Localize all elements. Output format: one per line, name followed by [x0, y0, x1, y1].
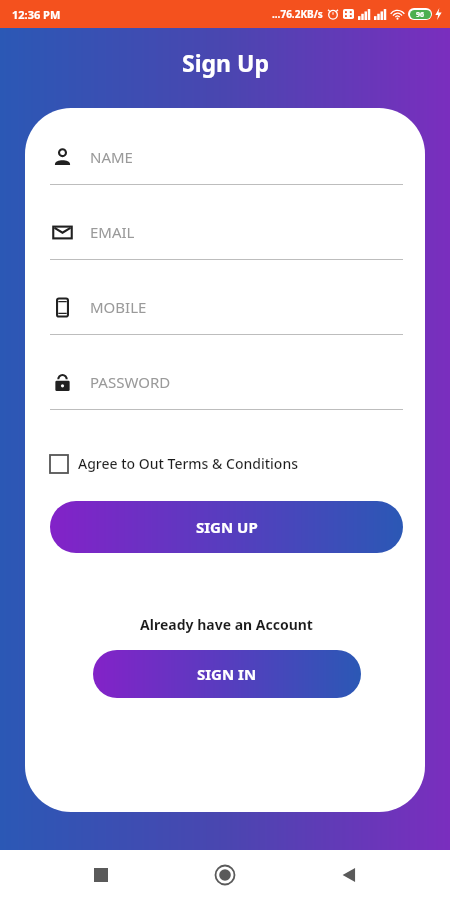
staticText: ...76.2KB/s	[272, 7, 323, 21]
button[interactable]: PASSWORD	[50, 361, 403, 436]
staticText: Already have an Account	[50, 615, 403, 634]
staticText: NAME	[90, 147, 133, 167]
staticText: Agree to Out Terms & Conditions	[78, 454, 298, 473]
staticText: 12:36 PM	[12, 7, 61, 22]
button[interactable]: NAME	[50, 136, 403, 211]
button[interactable]: Home	[202, 852, 248, 898]
button[interactable]: EMAIL	[50, 211, 403, 286]
staticText: PASSWORD	[90, 372, 171, 392]
button[interactable]: Agree to Out Terms & Conditions	[50, 454, 403, 473]
staticText: EMAIL	[90, 222, 135, 242]
button[interactable]: Recents	[78, 852, 124, 898]
staticText: 96	[416, 10, 425, 19]
staticText: SIGN UP	[196, 517, 258, 537]
staticText: SIGN IN	[197, 664, 257, 684]
button[interactable]: SIGN IN	[93, 650, 361, 698]
button[interactable]: SIGN UP	[50, 501, 403, 553]
staticText: Sign Up	[182, 47, 269, 78]
button[interactable]: MOBILE	[50, 286, 403, 361]
button[interactable]: Back	[326, 852, 372, 898]
staticText: MOBILE	[90, 297, 147, 317]
